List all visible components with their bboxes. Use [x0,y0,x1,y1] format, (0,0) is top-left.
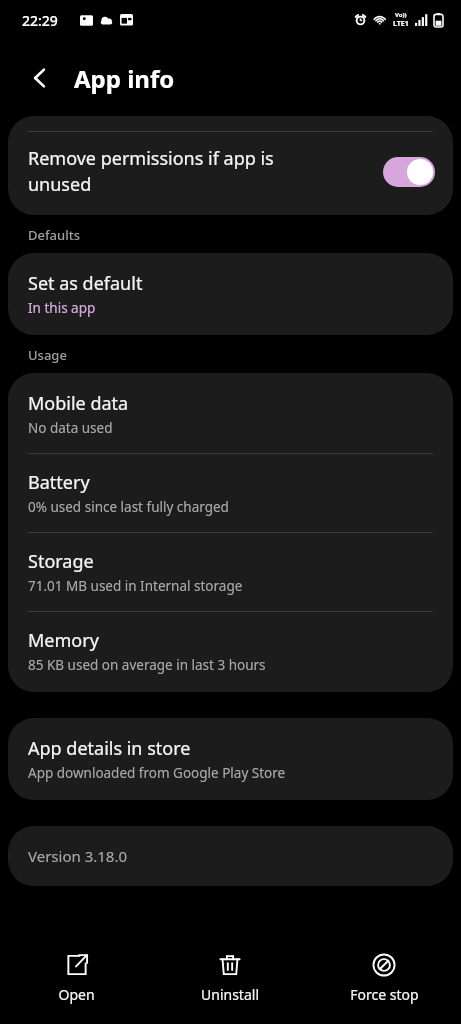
staticText: Set as default [28,271,143,296]
staticText: 71.01 MB used in Internal storage [28,577,243,595]
button[interactable]: Back [18,56,62,100]
staticText: App info [74,62,175,95]
staticText: Version 3.18.0 [28,846,128,866]
staticText: 22:29 [22,11,58,30]
staticText: Battery [28,470,90,495]
staticText: Mobile data [28,391,129,416]
staticText: No data used [28,419,113,437]
staticText: Uninstall [201,985,259,1004]
button[interactable]: App details in store [8,718,453,800]
staticText: Remove permissions if app is unused [28,146,371,197]
staticText: Vo)) [395,11,407,19]
button[interactable]: Storage [8,533,453,611]
staticText: Storage [28,549,94,574]
button[interactable]: Memory [8,612,453,692]
staticText: 85 KB used on average in last 3 hours [28,656,266,674]
staticText: Open [58,985,95,1004]
staticText: Memory [28,628,99,653]
staticText: LTE1 [393,19,409,29]
staticText: App downloaded from Google Play Store [28,764,286,782]
staticText: Usage [28,346,67,364]
button[interactable]: Uninstall [153,947,307,1010]
button[interactable]: Open [0,947,153,1010]
button[interactable]: Remove permissions toggle [383,157,435,187]
button[interactable]: Force stop [307,947,461,1010]
button[interactable]: Set as default [8,253,453,335]
button[interactable]: Remove permissions if app is unused [8,132,453,215]
staticText: Force stop [350,985,419,1004]
button[interactable]: Mobile data [8,373,453,453]
staticText: App details in store [28,736,191,761]
staticText: In this app [28,299,96,317]
staticText: Defaults [28,226,81,244]
staticText: 0% used since last fully charged [28,498,229,516]
button[interactable]: Battery [8,454,453,532]
